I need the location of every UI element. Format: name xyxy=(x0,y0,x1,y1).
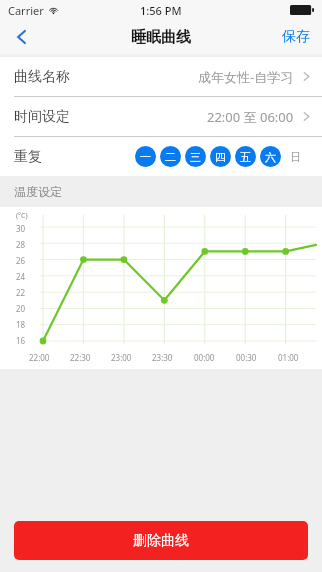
button[interactable]: 四 xyxy=(210,146,231,167)
staticText: 20 xyxy=(16,303,26,314)
staticText: 一 xyxy=(140,150,151,164)
staticText: 18 xyxy=(16,319,26,330)
staticText: 1:56 PM xyxy=(140,3,182,18)
button[interactable]: 日 xyxy=(285,146,306,167)
staticText: 28 xyxy=(16,239,26,250)
staticText: 删除曲线 xyxy=(133,532,189,550)
button[interactable]: 保存 xyxy=(270,20,322,54)
staticText: 保存 xyxy=(282,28,310,46)
staticText: 01:00 xyxy=(278,352,299,363)
staticText: 温度设定 xyxy=(14,184,62,199)
button[interactable]: 三 xyxy=(185,146,206,167)
button[interactable]: 一 xyxy=(135,146,156,167)
staticText: 六 xyxy=(265,150,276,164)
button[interactable]: 删除曲线 xyxy=(14,521,308,560)
staticText: (°C) xyxy=(16,211,28,221)
button[interactable]: 时间设定 xyxy=(0,97,322,136)
staticText: 曲线名称 xyxy=(14,68,70,86)
button[interactable]: 五 xyxy=(235,146,256,167)
staticText: 16 xyxy=(16,335,26,346)
staticText: 五 xyxy=(240,150,251,164)
staticText: 23:00 xyxy=(111,352,132,363)
staticText: 三 xyxy=(190,150,201,164)
staticText: 时间设定 xyxy=(14,108,70,126)
staticText: 30 xyxy=(16,223,26,234)
button[interactable]: 曲线名称 xyxy=(0,57,322,96)
staticText: Carrier xyxy=(8,3,44,18)
button[interactable]: Back xyxy=(0,20,44,54)
staticText: 四 xyxy=(215,150,226,164)
staticText: 22:30 xyxy=(70,352,91,363)
staticText: 22:00 至 06:00 xyxy=(207,108,294,126)
staticText: 22 xyxy=(16,287,26,298)
button[interactable]: 二 xyxy=(160,146,181,167)
staticText: 23:30 xyxy=(152,352,173,363)
staticText: 二 xyxy=(165,150,176,164)
staticText: 22:00 xyxy=(29,352,50,363)
staticText: 重复 xyxy=(14,148,42,166)
staticText: 成年女性-自学习 xyxy=(198,68,294,86)
staticText: 日 xyxy=(290,150,301,164)
staticText: 睡眠曲线 xyxy=(131,28,191,47)
staticText: 00:30 xyxy=(236,352,257,363)
staticText: 00:00 xyxy=(194,352,215,363)
staticText: 24 xyxy=(16,271,26,282)
staticText: 26 xyxy=(16,255,26,266)
button[interactable]: 六 xyxy=(260,146,281,167)
